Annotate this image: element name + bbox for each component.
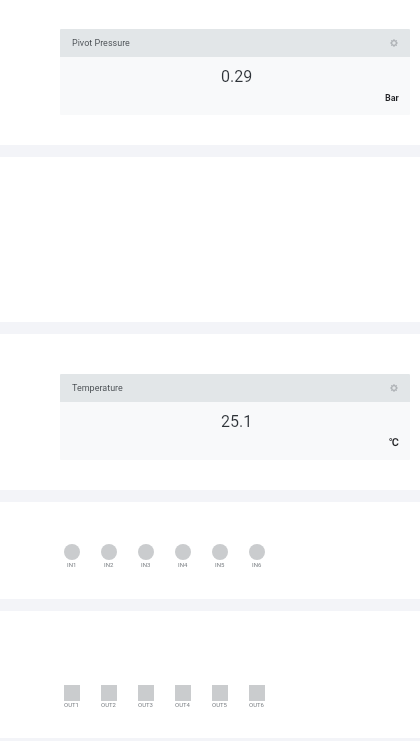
staticText: OUT1 [64, 701, 79, 708]
button[interactable]: OUT2 [90, 685, 127, 708]
staticText: OUT4 [175, 701, 190, 708]
staticText: Temperature [72, 383, 123, 394]
button[interactable]: OUT3 [127, 685, 164, 708]
button[interactable]: IN4 [164, 544, 201, 568]
staticText: 25.1 [221, 412, 253, 431]
button[interactable]: OUT1 [53, 685, 90, 708]
staticText: IN1 [67, 561, 77, 568]
button[interactable]: Settings [385, 379, 403, 397]
staticText: IN5 [215, 561, 225, 568]
staticText: 0.29 [221, 67, 253, 86]
button[interactable]: IN2 [90, 544, 127, 568]
staticText: IN3 [141, 561, 151, 568]
button[interactable]: IN3 [127, 544, 164, 568]
button[interactable]: IN5 [201, 544, 238, 568]
button[interactable]: IN6 [238, 544, 275, 568]
staticText: Pivot Pressure [72, 38, 130, 49]
staticText: ℃ [389, 436, 399, 449]
staticText: IN6 [252, 561, 262, 568]
button[interactable]: Pivot Pressure [60, 29, 410, 115]
staticText: OUT3 [138, 701, 153, 708]
staticText: IN4 [178, 561, 188, 568]
staticText: IN2 [104, 561, 114, 568]
staticText: OUT2 [101, 701, 116, 708]
button[interactable]: OUT6 [238, 685, 275, 708]
button[interactable]: OUT4 [164, 685, 201, 708]
button[interactable]: OUT5 [201, 685, 238, 708]
staticText: OUT6 [249, 701, 264, 708]
button[interactable]: Settings [385, 34, 403, 52]
staticText: OUT5 [212, 701, 227, 708]
staticText: Bar [385, 93, 399, 104]
button[interactable]: Temperature [60, 374, 410, 460]
button[interactable]: IN1 [53, 544, 90, 568]
